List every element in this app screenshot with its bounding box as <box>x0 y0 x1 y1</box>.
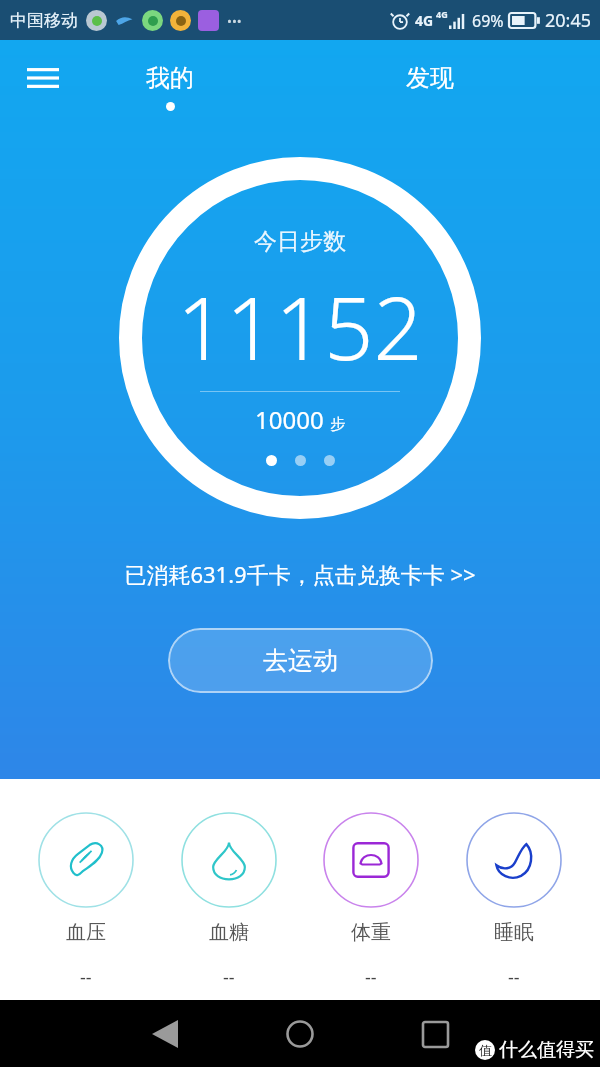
staticText: ••• <box>227 12 242 30</box>
staticText: 血压 <box>66 920 106 945</box>
button[interactable]: 我的 <box>118 40 222 116</box>
button[interactable]: 血压 <box>22 812 150 990</box>
button[interactable]: Menu <box>16 51 70 105</box>
staticText: 睡眠 <box>494 920 534 945</box>
staticText: 什么值得买 <box>499 1038 594 1062</box>
staticText: -- <box>80 965 92 990</box>
button[interactable]: Back <box>135 1004 195 1064</box>
staticText: 69% <box>472 10 504 32</box>
staticText: -- <box>365 965 377 990</box>
button[interactable]: 体重 <box>307 812 435 990</box>
staticText: 11152 <box>177 268 423 385</box>
button[interactable]: Recents <box>405 1004 465 1064</box>
button[interactable]: 已消耗631.9千卡，点击兑换卡卡 >> <box>0 554 600 594</box>
staticText: -- <box>223 965 235 990</box>
staticText: 发现 <box>406 63 454 93</box>
staticText: 体重 <box>351 920 391 945</box>
staticText: 步 <box>330 415 345 434</box>
staticText: 4G <box>436 8 448 20</box>
staticText: 10000 <box>255 403 324 436</box>
staticText: 中国移动 <box>10 10 78 31</box>
staticText: -- <box>508 965 520 990</box>
staticText: 今日步数 <box>254 227 346 256</box>
staticText: 值 <box>479 1042 492 1058</box>
button[interactable]: 血糖 <box>165 812 293 990</box>
staticText: 已消耗631.9千卡，点击兑换卡卡 >> <box>124 559 476 589</box>
button[interactable]: Home <box>270 1004 330 1064</box>
staticText: 血糖 <box>209 920 249 945</box>
staticText: 去运动 <box>263 645 338 676</box>
button[interactable]: 去运动 <box>168 628 433 693</box>
button[interactable]: 发现 <box>378 40 482 116</box>
staticText: 我的 <box>146 63 194 93</box>
staticText: 20:45 <box>545 8 592 33</box>
button[interactable]: 睡眠 <box>450 812 578 990</box>
staticText: 4G <box>415 11 434 30</box>
